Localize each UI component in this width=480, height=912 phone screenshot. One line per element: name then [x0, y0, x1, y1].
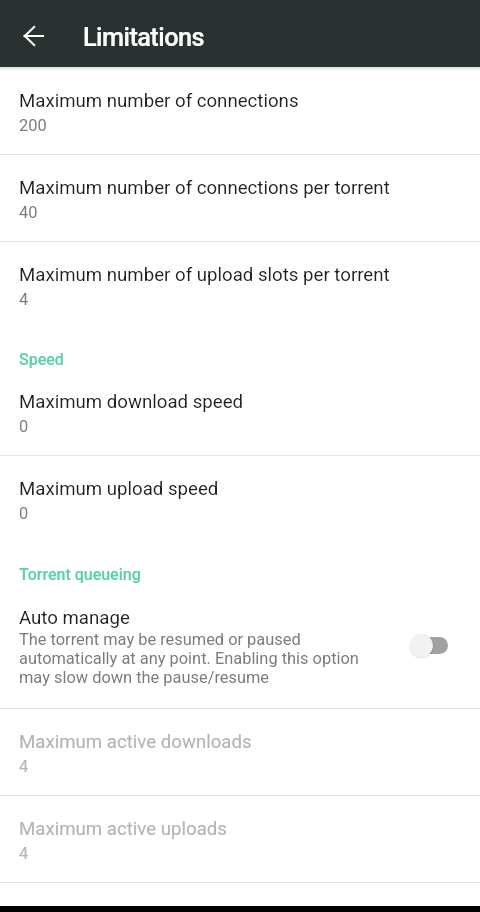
staticText: Maximum download speed	[19, 391, 244, 413]
staticText: Maximum active uploads	[19, 818, 227, 840]
staticText: Speed	[19, 350, 64, 369]
staticText: Maximum number of connections	[19, 90, 299, 112]
staticText: 4	[19, 844, 29, 863]
staticText: The torrent may be resumed or paused aut…	[19, 630, 393, 687]
staticText: 4	[19, 757, 29, 776]
staticText: 0	[19, 417, 29, 436]
button[interactable]: Maximum download speed	[0, 369, 480, 455]
staticText: Maximum number of connections per torren…	[19, 177, 390, 199]
button[interactable]: Maximum active downloads	[0, 709, 480, 795]
button[interactable]: Maximum active uploads	[0, 796, 480, 882]
button[interactable]: Maximum number of connections	[0, 67, 480, 154]
staticText: 40	[19, 203, 38, 222]
staticText: Maximum upload speed	[19, 478, 219, 500]
staticText: Maximum number of upload slots per torre…	[19, 264, 390, 286]
staticText: 4	[19, 290, 29, 309]
staticText: Auto manage	[19, 607, 130, 629]
staticText: 200	[19, 116, 47, 135]
staticText: Torrent queueing	[19, 565, 141, 584]
button[interactable]: Maximum upload speed	[0, 456, 480, 542]
button[interactable]: Back	[10, 12, 58, 60]
staticText: Maximum active downloads	[19, 731, 252, 753]
staticText: 0	[19, 504, 29, 523]
button[interactable]: Maximum number of connections per torren…	[0, 155, 480, 241]
button[interactable]: Auto manage	[0, 584, 480, 708]
staticText: Limitations	[83, 23, 204, 53]
button[interactable]: Maximum number of upload slots per torre…	[0, 242, 480, 328]
